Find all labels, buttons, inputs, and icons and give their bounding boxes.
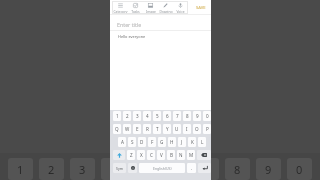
button[interactable]: SAVE	[190, 1, 211, 14]
staticText: E	[136, 126, 139, 132]
button[interactable]: 0	[203, 111, 211, 121]
staticText: L	[201, 139, 204, 145]
button[interactable]: G	[158, 137, 166, 147]
other: Voice	[178, 3, 183, 8]
button[interactable]: A	[118, 137, 126, 147]
staticText: Sym	[116, 166, 123, 171]
staticText: H	[170, 139, 174, 145]
staticText: 2	[126, 113, 129, 119]
button[interactable]: 5	[153, 111, 161, 121]
button[interactable]: 3	[133, 111, 141, 121]
button[interactable]: Drawing	[158, 1, 173, 14]
button[interactable]: S	[128, 137, 136, 147]
staticText: 9	[196, 113, 199, 119]
staticText: Category	[113, 9, 128, 13]
staticText: C	[150, 152, 153, 158]
button[interactable]: 5	[132, 158, 157, 180]
button[interactable]: Enter	[198, 163, 211, 173]
button[interactable]: Image	[143, 1, 158, 14]
button[interactable]: .	[187, 163, 196, 173]
staticText: English(US)	[153, 166, 172, 171]
button[interactable]: F	[148, 137, 156, 147]
staticText: J	[181, 139, 183, 145]
button[interactable]: W	[123, 124, 131, 134]
staticText: Z	[130, 152, 133, 158]
button[interactable]: 7	[173, 111, 181, 121]
button[interactable]: L	[198, 137, 206, 147]
button[interactable]: U	[173, 124, 181, 134]
staticText: X	[140, 152, 143, 158]
button[interactable]: C	[147, 150, 155, 160]
staticText: K	[191, 139, 194, 145]
button[interactable]: J	[178, 137, 186, 147]
button[interactable]: 2	[39, 158, 64, 180]
button[interactable]: N	[177, 150, 185, 160]
button[interactable]: 8	[225, 158, 250, 180]
button[interactable]: 1	[8, 158, 33, 180]
button[interactable]: X	[137, 150, 145, 160]
button[interactable]: I	[183, 124, 191, 134]
button[interactable]: R	[143, 124, 151, 134]
button[interactable]: 2	[123, 111, 131, 121]
staticText: 2	[48, 162, 55, 177]
button[interactable]: D	[138, 137, 146, 147]
button[interactable]: P	[203, 124, 211, 134]
button[interactable]: T	[153, 124, 161, 134]
button[interactable]: H	[168, 137, 176, 147]
other: Image	[148, 3, 153, 8]
button[interactable]: Z	[127, 150, 135, 160]
staticText: F	[151, 139, 154, 145]
button[interactable]: Y	[163, 124, 171, 134]
button[interactable]: B	[167, 150, 175, 160]
button[interactable]: M	[187, 150, 195, 160]
staticText: 0	[206, 113, 209, 119]
staticText: D	[140, 139, 144, 145]
staticText: 6	[172, 162, 179, 177]
staticText: .	[191, 165, 193, 171]
button[interactable]: 1	[113, 111, 121, 121]
staticText: O	[195, 126, 199, 132]
staticText: Q	[115, 126, 119, 132]
staticText: 7	[176, 113, 179, 119]
staticText: V	[160, 152, 163, 158]
button[interactable]: 4	[101, 158, 126, 180]
staticText: 0	[296, 162, 303, 177]
button[interactable]: Sym	[113, 163, 126, 173]
button[interactable]: Voice	[173, 1, 188, 14]
button[interactable]: 6	[163, 111, 171, 121]
staticText: N	[179, 152, 183, 158]
button[interactable]: 7	[194, 158, 219, 180]
button[interactable]: O	[193, 124, 201, 134]
button[interactable]: 0	[287, 158, 312, 180]
button[interactable]: Category	[112, 1, 128, 14]
button[interactable]: 4	[143, 111, 151, 121]
staticText: 8	[186, 113, 189, 119]
button[interactable]: Backspace	[197, 150, 211, 160]
button[interactable]: Emoji	[128, 163, 137, 173]
staticText: 1	[116, 113, 119, 119]
button[interactable]: K	[188, 137, 196, 147]
button[interactable]: 6	[163, 158, 188, 180]
button[interactable]: 8	[183, 111, 191, 121]
staticText: 3	[136, 113, 139, 119]
button[interactable]: 9	[256, 158, 281, 180]
staticText: Enter title	[117, 21, 142, 28]
staticText: R	[146, 126, 149, 132]
staticText: 4	[146, 113, 149, 119]
button[interactable]: V	[157, 150, 165, 160]
button[interactable]: 9	[193, 111, 201, 121]
other: Tasks	[133, 3, 138, 8]
staticText: 9	[265, 162, 272, 177]
button[interactable]: Shift	[113, 150, 125, 160]
button[interactable]: Tasks	[128, 1, 143, 14]
staticText: Drawing	[159, 9, 173, 13]
staticText: 3	[79, 162, 86, 177]
staticText: 4	[110, 162, 117, 177]
button[interactable]: Q	[113, 124, 121, 134]
button[interactable]: E	[133, 124, 141, 134]
button[interactable]: English(US)	[139, 163, 185, 173]
staticText: 8	[234, 162, 241, 177]
staticText: I	[186, 126, 188, 132]
other: Drawing	[163, 3, 168, 8]
button[interactable]: 3	[70, 158, 95, 180]
